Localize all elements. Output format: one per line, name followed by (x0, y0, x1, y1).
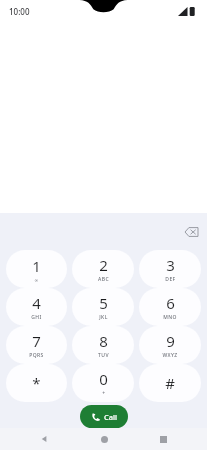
button[interactable]: 6 (139, 288, 201, 326)
button[interactable]: 4 (6, 288, 67, 326)
button[interactable]: Call (80, 405, 128, 428)
button[interactable]: Backspace (179, 220, 203, 244)
staticText: PQRS (29, 352, 44, 359)
staticText: 2 (99, 255, 108, 275)
button[interactable]: 9 (139, 326, 201, 364)
button[interactable]: Home (88, 428, 120, 450)
staticText: 8 (99, 331, 108, 351)
button[interactable]: 3 (139, 250, 201, 288)
button[interactable]: Recent apps (147, 428, 179, 450)
staticText: + (102, 390, 106, 397)
staticText: 9 (166, 331, 175, 351)
staticText: 7 (32, 331, 41, 351)
button[interactable]: * (6, 364, 67, 402)
staticText: 3 (166, 255, 175, 275)
staticText: 6 (166, 293, 175, 313)
button[interactable]: 0 (72, 364, 134, 402)
staticText: 4 (32, 293, 41, 313)
button[interactable]: # (139, 364, 201, 402)
staticText: Call (104, 412, 118, 422)
staticText: 1 (32, 256, 41, 276)
staticText: JKL (99, 314, 108, 321)
staticText: DEF (165, 276, 176, 283)
button[interactable]: Back (28, 428, 60, 450)
staticText: ∞ (34, 277, 39, 283)
staticText: TUV (98, 352, 109, 359)
staticText: GHI (31, 314, 42, 321)
button[interactable]: 2 (72, 250, 134, 288)
staticText: ABC (98, 276, 109, 283)
staticText: # (165, 373, 175, 393)
staticText: 5 (99, 293, 108, 313)
button[interactable]: 5 (72, 288, 134, 326)
staticText: 10:00 (9, 6, 30, 17)
staticText: MNO (163, 314, 177, 321)
staticText: * (32, 373, 41, 393)
button[interactable]: 7 (6, 326, 67, 364)
button[interactable]: 8 (72, 326, 134, 364)
staticText: 0 (99, 369, 108, 389)
button[interactable]: 1 (6, 250, 67, 288)
staticText: WXYZ (162, 352, 178, 359)
